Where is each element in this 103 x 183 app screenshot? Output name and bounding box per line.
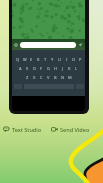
button[interactable]: P [77, 56, 84, 62]
button[interactable]: B [52, 74, 59, 80]
staticText: D [33, 66, 36, 71]
button[interactable]: X [31, 74, 38, 80]
staticText: H [54, 66, 57, 71]
staticText: U [58, 57, 61, 62]
button[interactable]: Text Studio [3, 124, 51, 134]
staticText: G [47, 66, 50, 71]
button[interactable]: Send Video [51, 124, 99, 134]
staticText: Send Video [60, 126, 90, 133]
staticText: V [47, 75, 50, 80]
staticText: W [23, 57, 27, 62]
staticText: P [79, 57, 82, 62]
staticText: Text Studio [12, 126, 42, 133]
button[interactable]: K [66, 65, 73, 71]
staticText: A [19, 66, 22, 71]
staticText: I [66, 57, 68, 62]
staticText: R [37, 57, 40, 62]
staticText: F [40, 66, 43, 71]
button[interactable]: I [63, 56, 70, 62]
button[interactable]: U [56, 56, 63, 62]
staticText: Y [51, 57, 54, 62]
staticText: M [68, 75, 72, 80]
staticText: J [62, 66, 64, 71]
staticText: X [33, 75, 36, 80]
staticText: B [54, 75, 57, 80]
button[interactable]: Send [78, 42, 83, 47]
button[interactable] [20, 42, 76, 48]
button[interactable]: H [52, 65, 59, 71]
button[interactable]: W [21, 56, 28, 62]
button[interactable]: N [59, 74, 66, 80]
button[interactable]: A [17, 65, 24, 71]
button[interactable]: G [45, 65, 52, 71]
button[interactable]: J [59, 65, 66, 71]
button[interactable]: O [70, 56, 77, 62]
button[interactable]: D [31, 65, 38, 71]
staticText: Z [26, 75, 29, 80]
button[interactable]: Z [24, 74, 31, 80]
button[interactable]: V [45, 74, 52, 80]
staticText: S [26, 66, 29, 71]
staticText: Q [16, 57, 20, 62]
staticText: O [72, 57, 76, 62]
button[interactable]: E [28, 56, 35, 62]
button[interactable]: R [35, 56, 42, 62]
button[interactable]: Q [14, 56, 21, 62]
staticText: E [30, 57, 33, 62]
button[interactable]: L [73, 65, 80, 71]
button[interactable]: Y [49, 56, 56, 62]
button[interactable]: C [38, 74, 45, 80]
staticText: N [61, 75, 65, 80]
staticText: L [75, 66, 78, 71]
button[interactable]: S [24, 65, 31, 71]
button[interactable]: Emoji [14, 43, 18, 47]
button[interactable]: M [66, 74, 73, 80]
staticText: C [40, 75, 43, 80]
staticText: T [44, 57, 47, 62]
button[interactable]: F [38, 65, 45, 71]
staticText: K [68, 66, 71, 71]
button[interactable]: T [42, 56, 49, 62]
